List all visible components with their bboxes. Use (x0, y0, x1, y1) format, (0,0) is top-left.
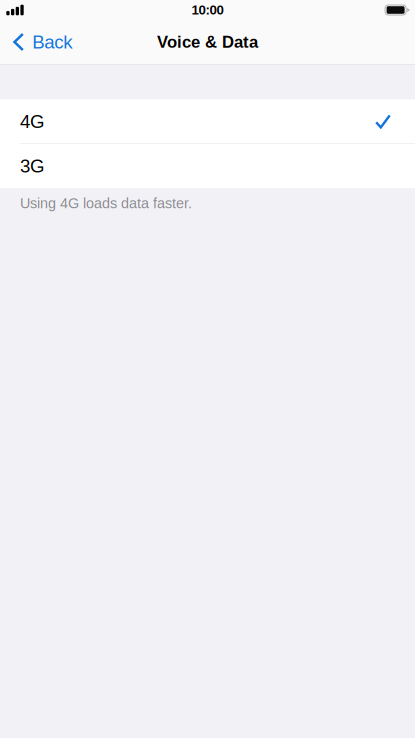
staticText: Back (32, 32, 72, 52)
button[interactable]: Back (0, 20, 110, 64)
staticText: Voice & Data (157, 33, 258, 51)
button[interactable]: 4G (0, 99, 415, 143)
staticText: Using 4G loads data faster. (20, 195, 192, 211)
button[interactable]: 3G (0, 144, 415, 188)
staticText: 4G (20, 111, 45, 132)
staticText: 3G (20, 156, 45, 177)
staticText: 10:00 (191, 3, 223, 17)
